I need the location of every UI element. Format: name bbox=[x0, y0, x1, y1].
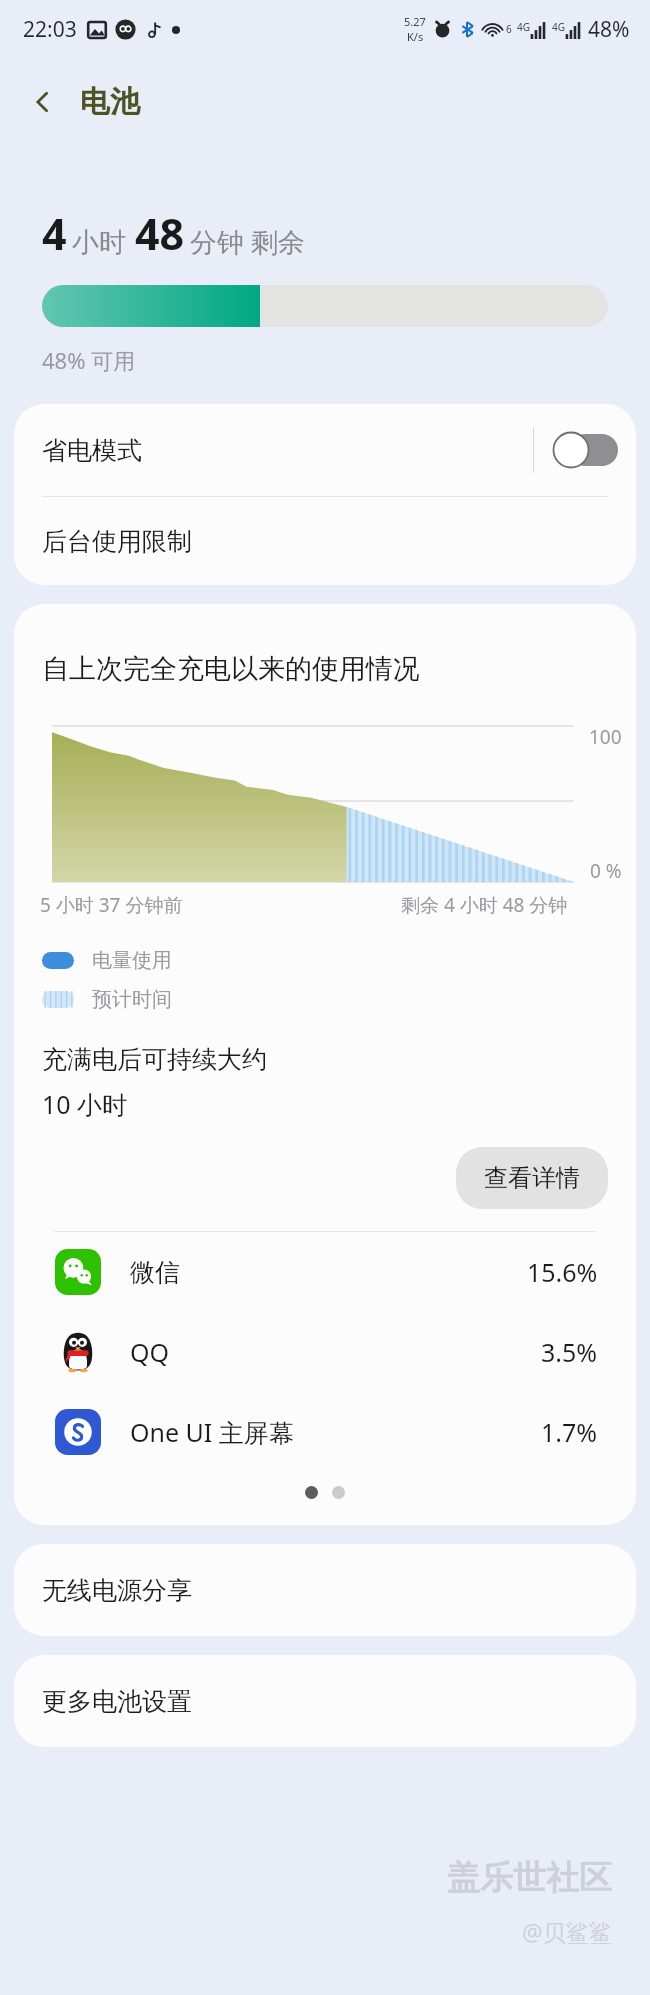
staticText: 6 bbox=[506, 22, 512, 36]
staticText: 后台使用限制 bbox=[42, 526, 192, 557]
button[interactable]: 省电模式开关 bbox=[552, 431, 618, 469]
staticText: 22:03 bbox=[23, 15, 77, 44]
button[interactable]: 返回 bbox=[14, 73, 72, 131]
staticText: 10 小时 bbox=[42, 1087, 128, 1121]
staticText: 4 bbox=[42, 204, 67, 263]
button[interactable] bbox=[305, 1486, 318, 1499]
staticText: 电量使用 bbox=[92, 948, 172, 973]
staticText: 自上次完全充电以来的使用情况 bbox=[42, 652, 420, 686]
staticText: 省电模式 bbox=[42, 435, 142, 466]
staticText: 48% 可用 bbox=[42, 345, 136, 375]
staticText: 盖乐世社区 bbox=[447, 1857, 612, 1899]
staticText: One UI 主屏幕 bbox=[130, 1415, 294, 1449]
staticText: QQ bbox=[130, 1335, 170, 1369]
button[interactable] bbox=[332, 1486, 345, 1499]
staticText: 48 bbox=[135, 204, 185, 263]
staticText: 预计时间 bbox=[92, 987, 172, 1012]
staticText: 充满电后可持续大约 bbox=[42, 1044, 267, 1075]
staticText: 48% bbox=[588, 15, 630, 44]
staticText: 15.6% bbox=[527, 1255, 598, 1289]
button[interactable]: 查看详情 bbox=[456, 1147, 608, 1209]
staticText: 1.7% bbox=[541, 1415, 598, 1449]
button[interactable]: 更多电池设置 bbox=[14, 1655, 636, 1747]
button[interactable]: 后台使用限制 bbox=[14, 497, 636, 585]
staticText: 100 bbox=[589, 724, 622, 750]
button[interactable]: 无线电源分享 bbox=[14, 1544, 636, 1636]
staticText: 5.27 bbox=[404, 14, 426, 29]
staticText: 0 % bbox=[590, 858, 622, 884]
button[interactable]: 微信 bbox=[14, 1232, 636, 1312]
staticText: 无线电源分享 bbox=[42, 1575, 192, 1606]
staticText: 5 小时 37 分钟前 bbox=[40, 892, 183, 918]
staticText: 4G bbox=[552, 20, 565, 34]
staticText: 电池 bbox=[80, 83, 140, 121]
staticText: 查看详情 bbox=[484, 1163, 580, 1193]
staticText: 剩余 4 小时 48 分钟 bbox=[401, 892, 568, 918]
staticText: 微信 bbox=[130, 1257, 180, 1288]
staticText: 分钟 剩余 bbox=[190, 223, 306, 260]
staticText: K/s bbox=[407, 29, 424, 44]
button[interactable]: 省电模式 bbox=[14, 404, 636, 496]
button[interactable]: QQ bbox=[14, 1312, 636, 1392]
staticText: 3.5% bbox=[541, 1335, 598, 1369]
staticText: 4G bbox=[517, 20, 530, 34]
staticText: @贝鲨鲨 bbox=[522, 1916, 612, 1947]
staticText: 小时 bbox=[72, 226, 126, 260]
staticText: 更多电池设置 bbox=[42, 1686, 192, 1717]
button[interactable]: One UI 主屏幕 bbox=[14, 1392, 636, 1472]
